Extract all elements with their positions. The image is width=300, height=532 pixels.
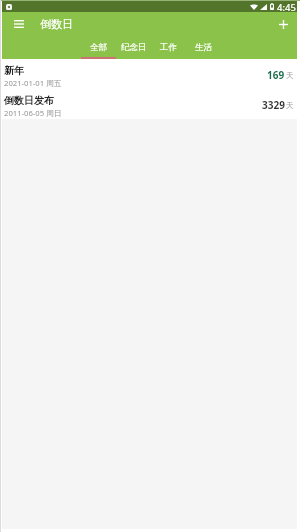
button[interactable]: Menu — [8, 13, 30, 35]
staticText: 天 — [286, 101, 294, 110]
staticText: 169 — [267, 68, 285, 82]
staticText: 倒数日发布 — [4, 94, 54, 107]
staticText: 2021-01-01 周五 — [4, 78, 62, 89]
staticText: 新年 — [4, 64, 24, 77]
staticText: 全部 — [90, 42, 107, 53]
staticText: 天 — [286, 71, 294, 80]
staticText: 2011-06-05 周日 — [4, 108, 62, 119]
button[interactable]: 新年 — [2, 59, 297, 89]
button[interactable]: 工作 — [151, 36, 186, 59]
button[interactable]: 倒数日发布 — [2, 89, 297, 119]
button[interactable]: 纪念日 — [116, 36, 151, 59]
staticText: 3329 — [262, 98, 285, 112]
staticText: 纪念日 — [121, 42, 147, 53]
button[interactable]: 生活 — [186, 36, 221, 59]
staticText: 4:45 — [277, 1, 296, 12]
button[interactable]: 全部 — [81, 36, 116, 59]
staticText: 工作 — [160, 42, 177, 53]
button[interactable]: Add — [272, 13, 294, 35]
staticText: 倒数日 — [40, 17, 73, 31]
staticText: 生活 — [195, 42, 212, 53]
